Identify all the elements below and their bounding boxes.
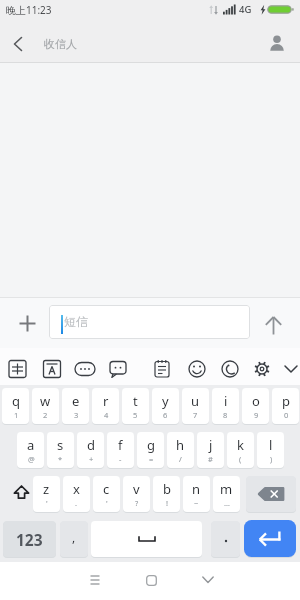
button[interactable]: m [213, 476, 240, 512]
button[interactable]: v [123, 476, 150, 512]
staticText: 4 [104, 410, 109, 420]
button[interactable] [80, 566, 110, 594]
staticText: r [103, 392, 109, 410]
staticText: a [27, 436, 35, 454]
staticText: z [43, 480, 50, 498]
staticText: @ [28, 454, 35, 464]
staticText: 9 [254, 410, 259, 420]
staticText: j [209, 436, 213, 454]
staticText: 0 [284, 410, 289, 420]
button[interactable] [18, 314, 36, 332]
staticText: ~ [194, 498, 199, 508]
button[interactable]: 123 [3, 521, 56, 557]
button[interactable]: z [33, 476, 60, 512]
button[interactable] [244, 520, 296, 557]
staticText: ' [46, 498, 48, 508]
button[interactable]: l [257, 432, 284, 468]
button[interactable] [5, 476, 37, 508]
button[interactable]: d [77, 432, 104, 468]
button[interactable]: k [227, 432, 254, 468]
button[interactable]: o [242, 388, 269, 424]
staticText: ? [135, 498, 139, 508]
staticText: e [72, 392, 80, 410]
staticText: + [89, 454, 94, 464]
staticText: 收信人 [44, 37, 77, 51]
staticText: * [58, 454, 63, 464]
button[interactable]: s [47, 432, 74, 468]
button[interactable]: b [153, 476, 180, 512]
button[interactable]: c [93, 476, 120, 512]
staticText: , [72, 529, 76, 545]
staticText: u [191, 392, 200, 410]
staticText: ' [106, 498, 108, 508]
staticText: v [133, 480, 140, 498]
staticText: b [163, 480, 171, 498]
button[interactable] [91, 521, 202, 557]
button[interactable] [262, 29, 292, 57]
staticText: 3 [74, 410, 79, 420]
staticText: g [147, 436, 155, 454]
staticText: ( [239, 454, 242, 464]
button[interactable] [261, 313, 285, 337]
staticText: 短信 [64, 314, 88, 329]
button[interactable] [136, 566, 166, 594]
staticText: w [40, 392, 51, 410]
staticText: - [119, 454, 122, 464]
button[interactable]: w [32, 388, 59, 424]
staticText: = [149, 454, 154, 464]
staticText: # [208, 454, 213, 464]
button[interactable] [193, 566, 223, 594]
staticText: / [179, 454, 182, 464]
button[interactable]: 短信 [49, 305, 250, 339]
button[interactable]: a [17, 432, 44, 468]
staticText: l [269, 436, 273, 454]
staticText: 5 [133, 410, 138, 420]
button[interactable] [246, 476, 296, 512]
staticText: ! [166, 498, 169, 508]
staticText: n [192, 480, 201, 498]
button[interactable]: y [152, 388, 179, 424]
staticText: 7 [193, 410, 198, 420]
button[interactable]: r [92, 388, 119, 424]
button[interactable]: , [60, 521, 88, 557]
staticText: m [220, 480, 233, 498]
button[interactable]: x [63, 476, 90, 512]
staticText: 6 [163, 410, 168, 420]
button[interactable]: e [62, 388, 89, 424]
button[interactable]: n [183, 476, 210, 512]
staticText: x [73, 480, 80, 498]
staticText: 1 [14, 410, 19, 420]
staticText: t [133, 392, 138, 410]
button[interactable] [211, 521, 240, 557]
staticText: y [162, 392, 169, 410]
staticText: 4G [239, 3, 252, 16]
button[interactable]: t [122, 388, 149, 424]
staticText: 8 [223, 410, 228, 420]
staticText: … [224, 498, 230, 508]
button[interactable]: h [167, 432, 194, 468]
staticText: o [252, 392, 260, 410]
button[interactable]: g [137, 432, 164, 468]
button[interactable]: q [2, 388, 29, 424]
staticText: 2 [43, 410, 48, 420]
staticText: p [282, 392, 290, 410]
staticText: q [12, 392, 20, 410]
staticText: f [118, 436, 123, 454]
staticText: 晚上11:23 [6, 3, 52, 17]
button[interactable]: f [107, 432, 134, 468]
staticText: h [176, 436, 185, 454]
staticText: d [87, 436, 95, 454]
button[interactable] [4, 30, 32, 58]
staticText: ) [270, 454, 273, 464]
staticText: 123 [16, 529, 43, 550]
button[interactable]: j [197, 432, 224, 468]
staticText: . [75, 498, 78, 508]
staticText: c [103, 480, 110, 498]
button[interactable]: u [182, 388, 209, 424]
staticText: k [237, 436, 244, 454]
button[interactable]: i [212, 388, 239, 424]
button[interactable]: p [272, 388, 299, 424]
staticText: i [224, 392, 228, 410]
staticText: s [57, 436, 64, 454]
